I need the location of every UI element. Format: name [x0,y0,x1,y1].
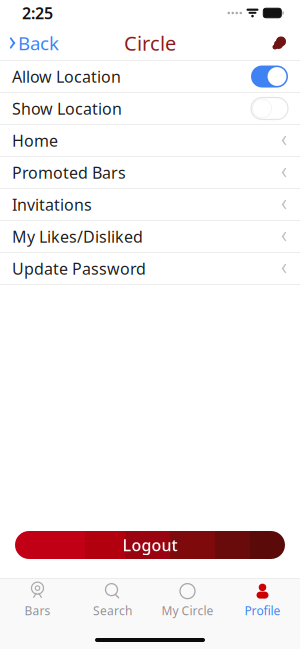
staticText: 2:25 [22,2,53,24]
button[interactable]: Promoted Bars [0,157,300,189]
button[interactable]: Messages [264,29,295,57]
button[interactable]: Back [0,25,67,61]
staticText: My Likes/Disliked [12,226,143,247]
staticText: Allow Location [12,66,121,87]
staticText: Back [18,31,59,55]
staticText: My Circle [161,603,213,618]
button[interactable]: My Likes/Disliked [0,221,300,253]
staticText: Search [93,603,132,618]
staticText: Profile [244,603,280,618]
button[interactable]: Logout [15,531,285,559]
staticText: Update Password [12,258,146,279]
staticText: Circle [124,30,176,56]
staticText: Logout [122,534,177,556]
button[interactable]: Invitations [0,189,300,221]
button[interactable]: Show Location [0,93,300,125]
staticText: Show Location [12,98,122,119]
staticText: Bars [24,603,50,618]
staticText: Invitations [12,194,92,215]
button[interactable]: Allow Location [0,61,300,93]
button[interactable]: Update Password [0,253,300,285]
button[interactable]: Home [0,125,300,157]
button[interactable]: Bars [0,577,75,622]
button[interactable]: Profile [225,577,300,622]
button[interactable]: Search [75,577,150,622]
button[interactable]: My Circle [150,577,225,622]
staticText: Home [12,130,58,151]
staticText: Promoted Bars [12,162,126,183]
